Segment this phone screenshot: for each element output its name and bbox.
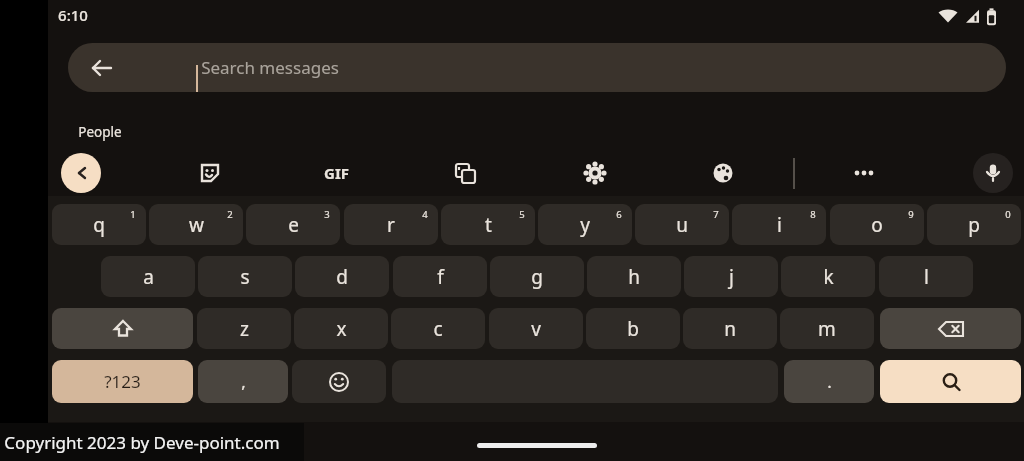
button[interactable]: s <box>198 256 292 297</box>
button[interactable]: Settings <box>573 153 617 193</box>
staticText: o <box>871 212 883 238</box>
staticText: ?123 <box>104 370 141 393</box>
staticText: t <box>485 212 492 238</box>
staticText: r <box>387 212 395 238</box>
staticText: i <box>777 212 782 238</box>
button[interactable]: d <box>295 256 389 297</box>
button[interactable]: f <box>393 256 487 297</box>
button[interactable]: q <box>52 204 146 245</box>
staticText: c <box>433 316 443 342</box>
staticText: 0 <box>1005 208 1011 221</box>
staticText: w <box>189 212 204 238</box>
button[interactable]: w <box>149 204 243 245</box>
button[interactable]: Stickers <box>188 153 232 193</box>
button[interactable]: , <box>198 360 288 403</box>
staticText: k <box>823 264 834 290</box>
button[interactable]: a <box>101 256 195 297</box>
staticText: . <box>827 370 832 393</box>
button[interactable]: t <box>441 204 535 245</box>
staticText: x <box>336 316 347 342</box>
staticText: 1 <box>130 208 136 221</box>
staticText: p <box>968 212 980 238</box>
staticText: a <box>143 264 154 290</box>
button[interactable]: Back <box>61 153 101 193</box>
staticText: Copyright 2023 by Deve-point.com <box>4 431 280 454</box>
button[interactable]: x <box>294 308 388 349</box>
staticText: 6:10 <box>58 5 88 25</box>
staticText: u <box>676 212 688 238</box>
button[interactable]: . <box>784 360 874 403</box>
button[interactable]: Shift <box>52 308 193 349</box>
button[interactable]: y <box>538 204 632 245</box>
button[interactable]: b <box>586 308 680 349</box>
button[interactable]: e <box>246 204 340 245</box>
button[interactable]: Translate <box>443 153 487 193</box>
button[interactable]: Theme <box>701 153 745 193</box>
staticText: Search messages <box>201 56 339 79</box>
button[interactable]: u <box>635 204 729 245</box>
button[interactable]: o <box>830 204 924 245</box>
button[interactable]: Voice input <box>973 153 1013 193</box>
staticText: 6 <box>616 208 622 221</box>
button[interactable]: g <box>490 256 584 297</box>
button[interactable]: ?123 <box>52 360 193 403</box>
button[interactable]: r <box>344 204 438 245</box>
button[interactable]: j <box>684 256 778 297</box>
button[interactable]: k <box>781 256 875 297</box>
staticText: n <box>724 316 736 342</box>
staticText: b <box>627 316 639 342</box>
staticText: y <box>580 212 590 238</box>
staticText: 3 <box>324 208 330 221</box>
staticText: 9 <box>908 208 914 221</box>
button[interactable]: Backspace <box>880 308 1021 349</box>
staticText: 7 <box>713 208 719 221</box>
staticText: GIF <box>324 163 349 183</box>
staticText: g <box>531 264 543 290</box>
staticText: , <box>241 370 246 393</box>
button[interactable]: Emoji <box>292 360 386 403</box>
staticText: m <box>818 316 836 342</box>
staticText: People <box>78 123 122 141</box>
button[interactable]: i <box>732 204 826 245</box>
button[interactable]: h <box>587 256 681 297</box>
staticText: 2 <box>227 208 233 221</box>
button[interactable]: Search <box>880 360 1021 403</box>
staticText: f <box>437 264 444 290</box>
button[interactable]: l <box>879 256 973 297</box>
staticText: l <box>924 264 929 290</box>
staticText: v <box>531 316 541 342</box>
staticText: 4 <box>422 208 428 221</box>
button[interactable]: p <box>927 204 1021 245</box>
button[interactable]: More options <box>842 153 886 193</box>
button[interactable]: v <box>489 308 583 349</box>
staticText: 8 <box>810 208 816 221</box>
staticText: e <box>288 212 299 238</box>
staticText: z <box>240 316 249 342</box>
button[interactable]: z <box>197 308 291 349</box>
button[interactable]: GIF <box>314 153 358 193</box>
staticText: s <box>240 264 250 290</box>
button[interactable]: Search messages <box>68 43 1006 92</box>
staticText: q <box>93 212 105 238</box>
button[interactable]: c <box>391 308 485 349</box>
button[interactable]: n <box>683 308 777 349</box>
staticText: d <box>336 264 348 290</box>
staticText: h <box>628 264 640 290</box>
staticText: j <box>729 264 734 290</box>
staticText: 5 <box>519 208 525 221</box>
button[interactable]: m <box>780 308 874 349</box>
